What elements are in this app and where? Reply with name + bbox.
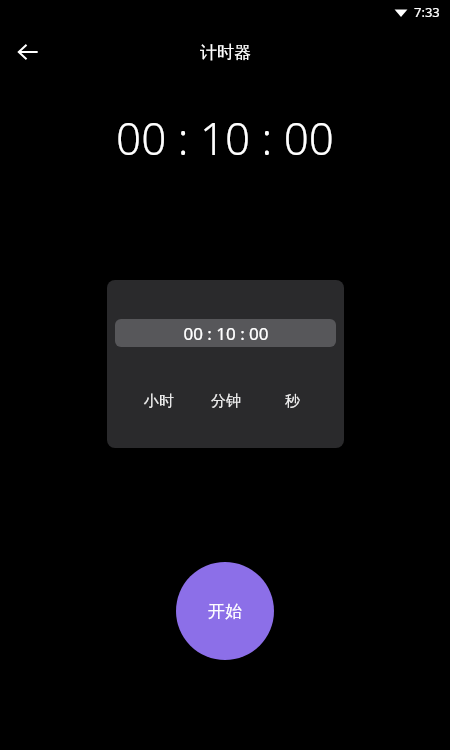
- staticText: 00 : 10 : 00: [116, 108, 334, 168]
- staticText: 小时: [144, 392, 174, 411]
- staticText: 计时器: [200, 42, 251, 63]
- button[interactable]: 分钟: [192, 392, 259, 411]
- staticText: 秒: [285, 392, 300, 411]
- staticText: 分钟: [211, 392, 241, 411]
- staticText: 7:33: [414, 3, 440, 21]
- button[interactable]: 开始: [176, 562, 274, 660]
- button[interactable]: Back: [8, 32, 48, 72]
- button[interactable]: 秒: [259, 392, 326, 411]
- staticText: 开始: [208, 601, 242, 622]
- button[interactable]: 小时: [125, 392, 192, 411]
- staticText: 00 : 10 : 00: [183, 322, 269, 345]
- button[interactable]: 00 : 10 : 00: [115, 319, 336, 347]
